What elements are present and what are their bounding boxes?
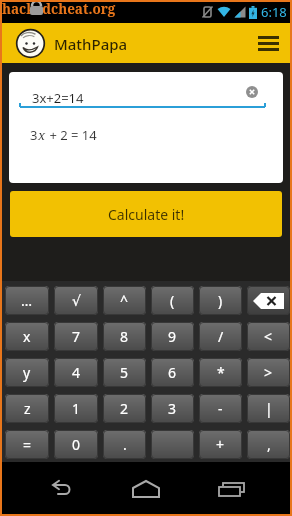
staticText: ) [218, 291, 223, 310]
button[interactable] [37, 465, 85, 513]
button[interactable]: ^ [103, 286, 146, 315]
button[interactable]: y [5, 358, 49, 387]
button[interactable]: 5 [103, 358, 146, 387]
staticText: y [23, 363, 31, 382]
button[interactable]: > [247, 358, 290, 387]
staticText: 2 [120, 399, 129, 418]
staticText: x [38, 126, 46, 144]
staticText: ( [170, 291, 175, 310]
button[interactable]: 6 [151, 358, 194, 387]
staticText: - [218, 399, 223, 418]
button[interactable]: 1 [54, 394, 98, 423]
button[interactable]: / [199, 322, 242, 351]
button[interactable]: 8 [103, 322, 146, 351]
button[interactable] [247, 286, 290, 315]
button[interactable] [151, 430, 194, 459]
staticText: z [24, 399, 31, 418]
staticText: + [216, 435, 225, 454]
button[interactable]: 4 [54, 358, 98, 387]
button[interactable]: < [247, 322, 290, 351]
staticText: > [264, 363, 273, 382]
staticText: x [23, 327, 31, 346]
button[interactable]: x [5, 322, 49, 351]
button[interactable]: 2 [103, 394, 146, 423]
staticText: 1 [72, 399, 81, 418]
staticText: 3 [30, 126, 38, 144]
button[interactable]: √ [54, 286, 98, 315]
staticText: ^ [120, 291, 129, 310]
button[interactable]: 9 [151, 322, 194, 351]
staticText: , [267, 435, 271, 454]
staticText: < [264, 327, 273, 346]
button[interactable]: , [247, 430, 290, 459]
button[interactable]: * [199, 358, 242, 387]
staticText: MathPapa [54, 34, 128, 54]
staticText: | [265, 399, 273, 418]
button[interactable]: Calculate it! [10, 191, 282, 237]
button[interactable] [246, 86, 258, 98]
staticText: 6 [168, 363, 177, 382]
staticText: hackedcheat.org [2, 0, 116, 18]
button[interactable]: + [199, 430, 242, 459]
button[interactable]: ) [199, 286, 242, 315]
staticText [171, 435, 175, 454]
staticText: = [23, 435, 32, 454]
staticText: 6:18 [261, 3, 287, 21]
staticText: 4 [72, 363, 81, 382]
staticText: 8 [120, 327, 129, 346]
button[interactable]: | [247, 394, 290, 423]
staticText: 5 [120, 363, 129, 382]
button[interactable]: ( [151, 286, 194, 315]
button[interactable]: . [103, 430, 146, 459]
staticText: / [218, 327, 224, 346]
staticText: 3 [168, 399, 177, 418]
button[interactable]: … [5, 286, 49, 315]
staticText: 7 [72, 327, 81, 346]
button[interactable] [254, 29, 282, 57]
button[interactable]: = [5, 430, 49, 459]
staticText: … [21, 291, 33, 310]
button[interactable] [207, 465, 255, 513]
button[interactable]: 0 [54, 430, 98, 459]
staticText: √ [72, 293, 81, 309]
staticText: 0 [72, 435, 81, 454]
button[interactable] [122, 465, 170, 513]
staticText: + 2 = 14 [46, 126, 97, 144]
staticText: 9 [168, 327, 177, 346]
button[interactable]: z [5, 394, 49, 423]
staticText: . [123, 435, 127, 454]
staticText: Calculate it! [108, 205, 185, 224]
staticText: * [217, 363, 225, 382]
button[interactable]: 3 [151, 394, 194, 423]
staticText: 3x+2=14 [32, 89, 84, 107]
button[interactable]: - [199, 394, 242, 423]
button[interactable]: 7 [54, 322, 98, 351]
